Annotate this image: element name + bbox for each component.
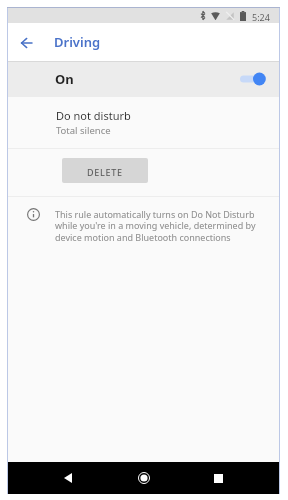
button[interactable]: Recents: [204, 464, 232, 492]
button[interactable]: Do not disturb: [7, 90, 280, 148]
staticText: 5:24: [252, 11, 270, 23]
staticText: Do not disturb: [56, 108, 131, 123]
button[interactable]: DELETE: [62, 158, 148, 183]
staticText: Driving: [54, 33, 101, 51]
button[interactable]: Home: [130, 464, 158, 492]
button[interactable]: On: [7, 61, 280, 97]
staticText: DELETE: [87, 166, 123, 178]
button[interactable]: Back: [15, 31, 38, 54]
button[interactable]: Back: [54, 464, 82, 492]
staticText: On: [55, 70, 74, 88]
staticText: This rule automatically turns on Do Not …: [55, 208, 256, 244]
staticText: Total silence: [56, 124, 111, 137]
